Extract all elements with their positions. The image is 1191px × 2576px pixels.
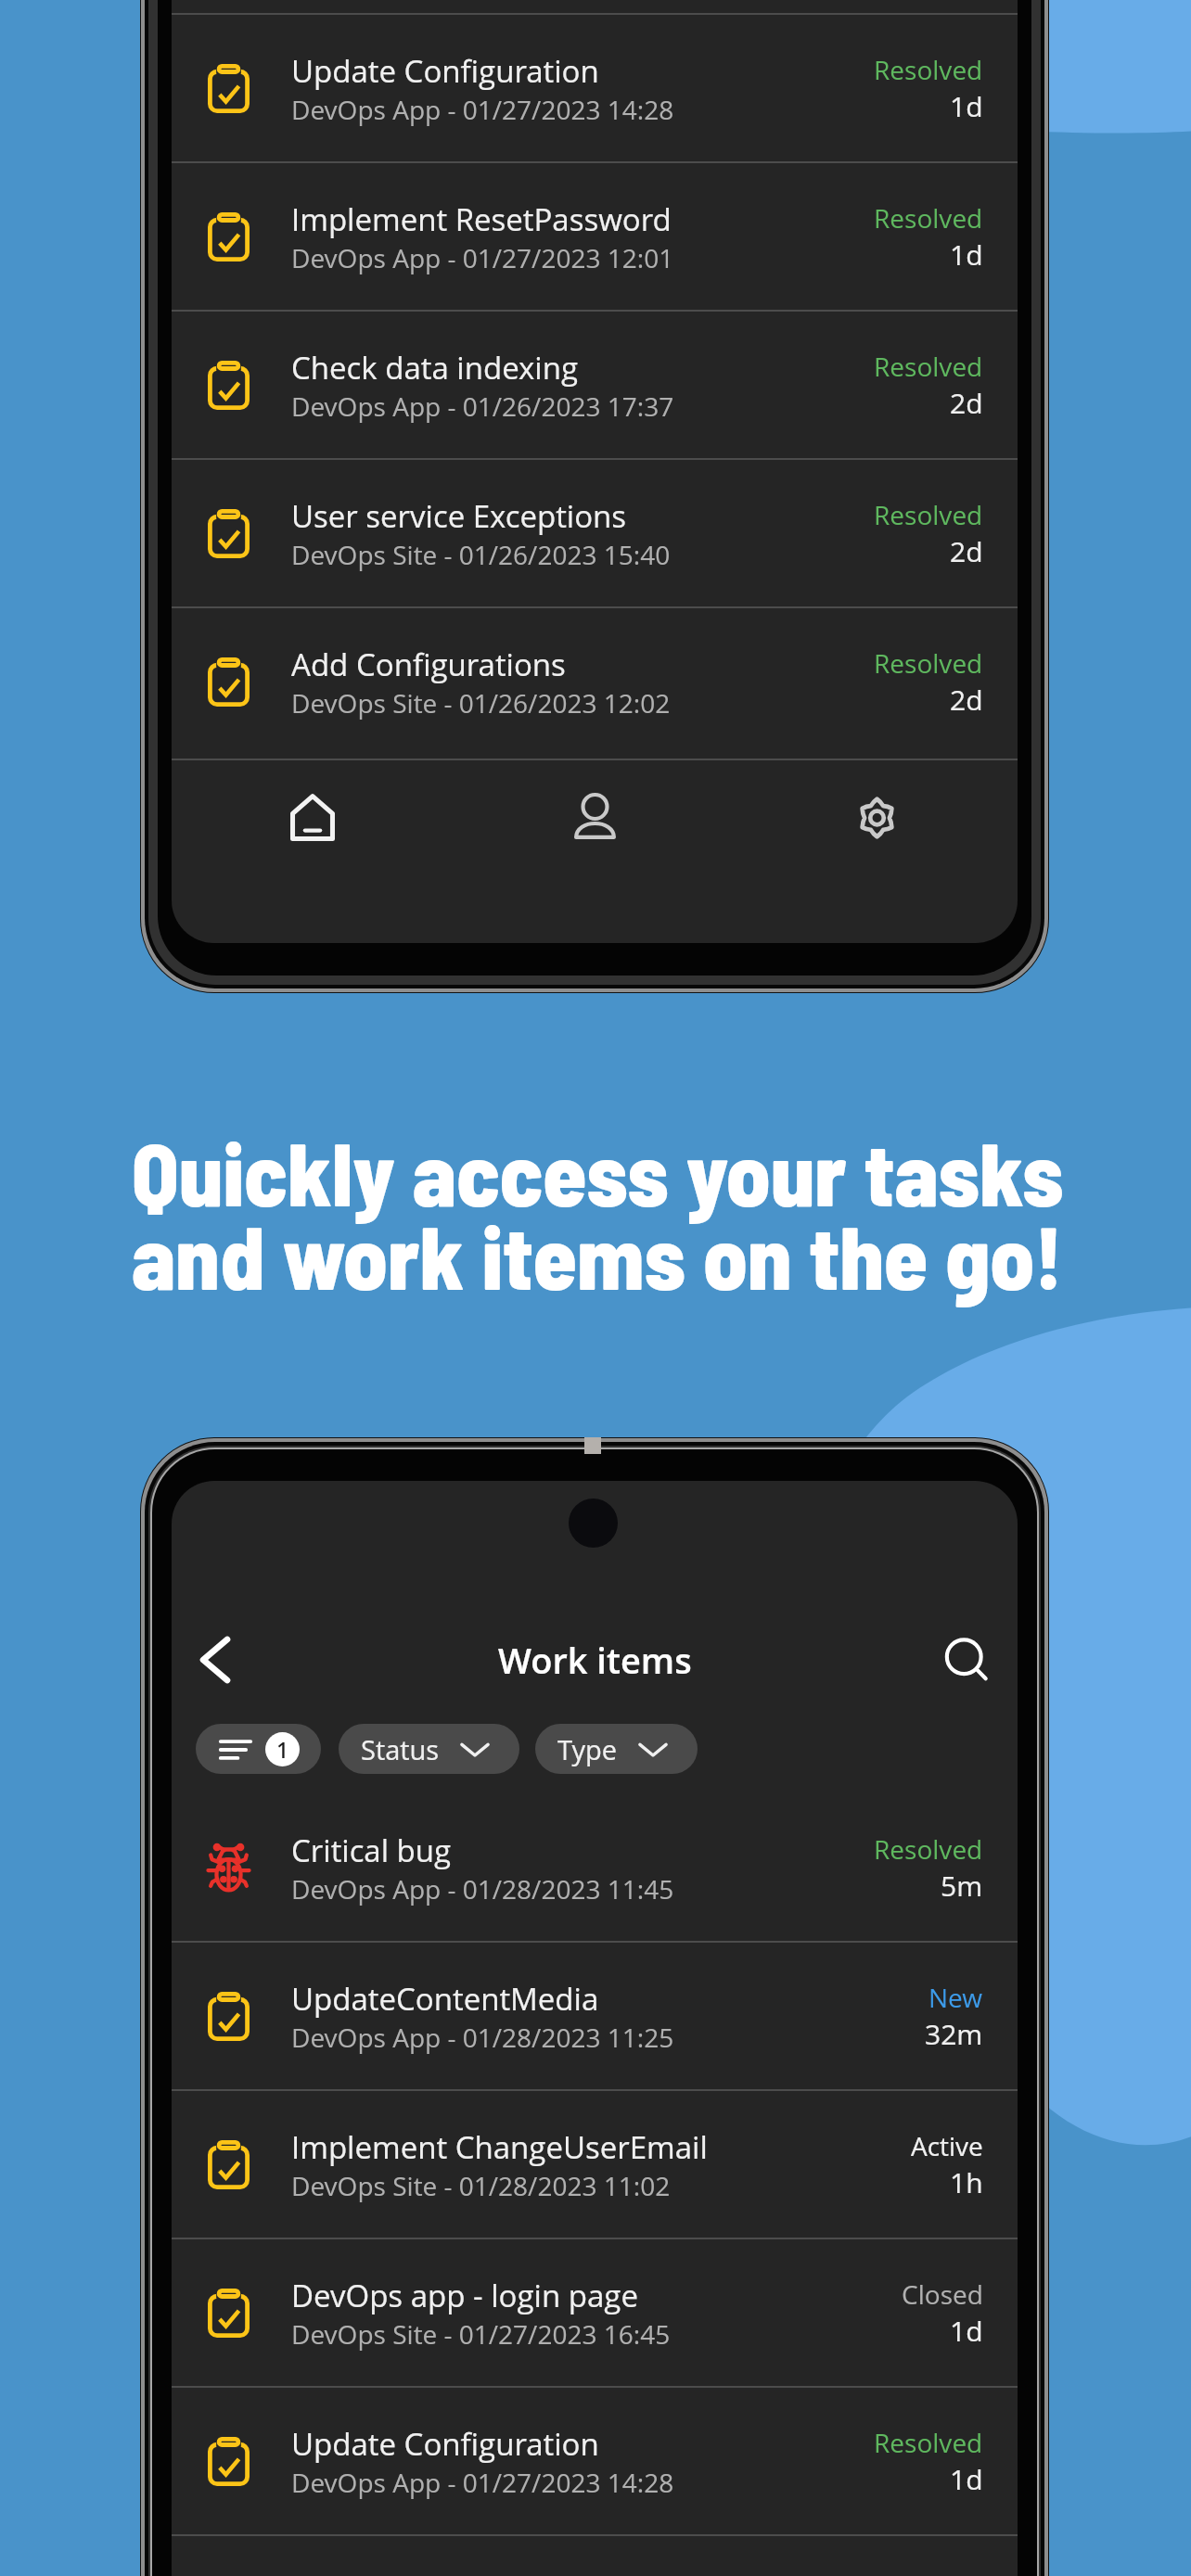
button[interactable]: Critical bug xyxy=(172,1794,1018,1941)
button[interactable]: User service Exceptions xyxy=(172,460,1018,606)
staticText: DevOps App - 01/28/2023 11:25 xyxy=(291,2020,674,2055)
button[interactable]: Implement ResetPassword xyxy=(172,163,1018,310)
staticText: Add Configurations xyxy=(291,644,566,685)
staticText: DevOps Site - 01/26/2023 15:40 xyxy=(291,537,671,572)
staticText: 1d xyxy=(950,2460,983,2498)
staticText: Critical bug xyxy=(291,1830,452,1871)
button[interactable]: Check data indexing xyxy=(172,312,1018,458)
staticText: DevOps Site - 01/27/2023 16:45 xyxy=(291,2316,671,2352)
staticText: DevOps App - 01/27/2023 12:01 xyxy=(291,240,674,275)
staticText: Active xyxy=(911,2128,983,2163)
button[interactable]: Type xyxy=(535,1724,698,1774)
staticText: 1d xyxy=(950,87,983,125)
staticText: 1d xyxy=(950,2312,983,2350)
staticText: Work items xyxy=(498,1636,692,1684)
staticText: DevOps Site - 01/26/2023 12:02 xyxy=(291,685,671,721)
staticText: Resolved xyxy=(874,349,983,384)
staticText: Check data indexing xyxy=(291,347,578,389)
staticText: DevOps App - 01/28/2023 11:45 xyxy=(291,1871,674,1906)
staticText: User service Exceptions xyxy=(291,495,627,537)
staticText: DevOps App - 01/26/2023 17:37 xyxy=(291,389,674,424)
staticText: 1d xyxy=(950,236,983,274)
staticText: New xyxy=(928,1980,983,2015)
staticText: Update Configuration xyxy=(291,50,599,92)
staticText: Implement ChangeUserEmail xyxy=(291,2126,708,2168)
staticText: Closed xyxy=(902,2276,983,2312)
staticText: Resolved xyxy=(874,645,983,681)
button[interactable]: Back xyxy=(172,1605,259,1715)
staticText: 1h xyxy=(950,2163,983,2201)
staticText: DevOps Site - 01/28/2023 11:02 xyxy=(291,2168,671,2203)
button[interactable]: Home xyxy=(172,760,454,943)
button[interactable]: Profile xyxy=(454,760,736,943)
staticText: Resolved xyxy=(874,497,983,532)
button[interactable]: DevOps app - login page xyxy=(172,2239,1018,2386)
staticText: DevOps App - 01/27/2023 14:28 xyxy=(291,2465,674,2500)
staticText: 2d xyxy=(950,681,983,719)
button[interactable]: Update Configuration xyxy=(172,2388,1018,2534)
staticText: 1 xyxy=(276,1735,289,1764)
staticText: DevOps App - 01/27/2023 14:28 xyxy=(291,92,674,127)
staticText: Status xyxy=(361,1731,440,1767)
button[interactable]: Add Configurations xyxy=(172,608,1018,755)
staticText: Implement ResetPassword xyxy=(291,198,672,240)
button[interactable]: Update Configuration xyxy=(172,15,1018,161)
staticText: Update Configuration xyxy=(291,2423,599,2465)
staticText: Type xyxy=(557,1731,618,1767)
staticText: 5m xyxy=(941,1867,983,1905)
button[interactable]: UpdateContentMedia xyxy=(172,1943,1018,2089)
staticText: Quickly access your tasks and work items… xyxy=(132,1118,1064,1307)
staticText: DevOps app - login page xyxy=(291,2275,638,2316)
staticText: Resolved xyxy=(874,52,983,87)
staticText: Resolved xyxy=(874,1831,983,1867)
staticText: Resolved xyxy=(874,200,983,236)
staticText: 32m xyxy=(925,2015,983,2053)
button[interactable]: Search xyxy=(916,1605,1018,1715)
button[interactable]: Implement ChangeUserEmail xyxy=(172,2091,1018,2238)
staticText: Resolved xyxy=(874,2425,983,2460)
button[interactable]: Filters xyxy=(196,1724,321,1774)
staticText: 2d xyxy=(950,384,983,422)
staticText: UpdateContentMedia xyxy=(291,1978,599,2020)
button[interactable]: Settings xyxy=(736,760,1018,943)
staticText: 2d xyxy=(950,532,983,570)
button[interactable]: Status xyxy=(339,1724,519,1774)
